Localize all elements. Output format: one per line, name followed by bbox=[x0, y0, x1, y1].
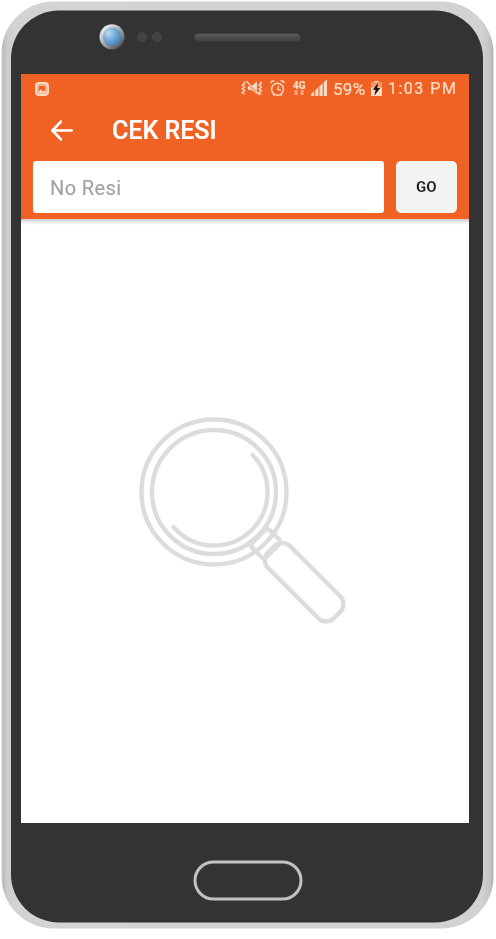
staticText: CEK RESI bbox=[112, 116, 217, 145]
staticText: 59% bbox=[333, 79, 366, 99]
button[interactable]: GO bbox=[396, 161, 457, 213]
staticText: No Resi bbox=[50, 176, 122, 199]
button[interactable]: Back bbox=[40, 100, 82, 142]
staticText: GO bbox=[416, 178, 437, 196]
staticText: 1:03 PM bbox=[388, 79, 458, 98]
button[interactable]: No Resi bbox=[33, 161, 384, 213]
staticText: 4G bbox=[293, 80, 306, 92]
